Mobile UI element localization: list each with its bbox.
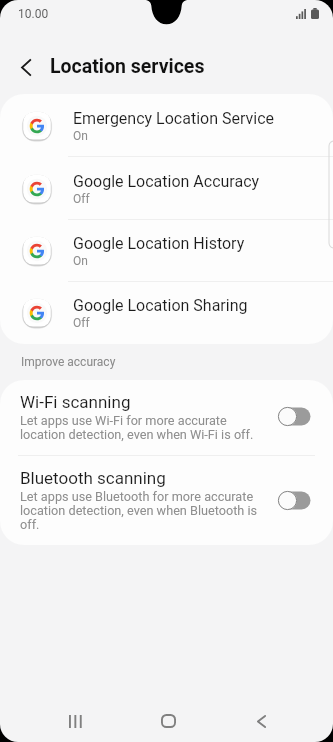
staticText: On [73,254,88,268]
staticText: Off [73,192,90,206]
staticText: Let apps use Wi-Fi for more accurate loc… [20,414,254,442]
button[interactable]: Toggle [278,491,312,510]
button[interactable]: Google Location History [0,220,333,282]
button[interactable]: Google Location Sharing [0,282,333,344]
staticText: Emergency Location Service [73,109,275,128]
staticText: Location services [50,55,205,78]
button[interactable]: Toggle [278,407,312,426]
button[interactable]: Navigate up [10,51,42,83]
staticText: Google Location History [73,234,245,253]
button[interactable]: Bluetooth scanning [0,456,333,545]
button[interactable]: Home [138,703,198,739]
staticText: Google Location Accuracy [73,172,260,191]
staticText: Improve accuracy [21,355,333,369]
staticText: 10.00 [18,7,49,21]
staticText: On [73,129,88,143]
staticText: Bluetooth scanning [20,468,166,488]
button[interactable]: Emergency Location Service [0,94,333,157]
staticText: Google Location Sharing [73,296,248,315]
button[interactable]: Wi-Fi scanning [0,380,333,456]
button[interactable]: Back [231,703,291,739]
staticText: Wi-Fi scanning [20,392,131,412]
staticText: Off [73,316,90,330]
staticText: Let apps use Bluetooth for more accurate… [20,490,258,532]
button[interactable]: Google Location Accuracy [0,157,333,220]
button[interactable]: Recent apps [45,703,105,739]
